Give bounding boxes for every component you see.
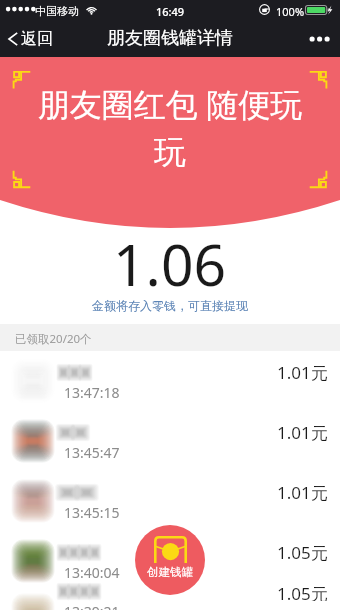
button[interactable]: 13:45:15 bbox=[0, 471, 340, 531]
button[interactable]: 13:40:04 bbox=[0, 531, 340, 591]
staticText: 返回 bbox=[21, 29, 53, 49]
button[interactable]: 13:47:18 bbox=[0, 351, 340, 411]
staticText: 1.01元 bbox=[277, 481, 328, 504]
button[interactable]: 创建钱罐 bbox=[135, 525, 205, 595]
staticText: 13:45:47 bbox=[64, 443, 120, 462]
staticText: 13:39:21 bbox=[64, 602, 120, 610]
staticText: 朋友圈红包 随便玩玩 bbox=[36, 82, 304, 173]
staticText: 创建钱罐 bbox=[147, 565, 193, 579]
staticText: 13:45:15 bbox=[64, 503, 120, 522]
button[interactable]: 返回 bbox=[0, 23, 61, 55]
staticText: 100% bbox=[276, 4, 305, 19]
staticText: 1.05元 bbox=[277, 582, 328, 601]
staticText: 朋友圈钱罐详情 bbox=[107, 27, 233, 50]
staticText: 16:49 bbox=[156, 4, 185, 19]
staticText: 1.01元 bbox=[277, 361, 328, 384]
button[interactable]: 13:45:47 bbox=[0, 411, 340, 471]
button[interactable]: 13:39:21 bbox=[0, 591, 340, 610]
staticText: 金额将存入零钱，可直接提现 bbox=[92, 298, 248, 313]
staticText: 已领取20/20个 bbox=[15, 331, 92, 347]
staticText: 13:47:18 bbox=[64, 383, 120, 402]
staticText: 1.06 bbox=[113, 225, 227, 303]
staticText: 1.01元 bbox=[277, 421, 328, 444]
button[interactable]: 更多 bbox=[305, 24, 335, 54]
staticText: 13:40:04 bbox=[64, 563, 120, 582]
staticText: 1.05元 bbox=[277, 541, 328, 564]
staticText: 中国移动 bbox=[35, 4, 79, 18]
